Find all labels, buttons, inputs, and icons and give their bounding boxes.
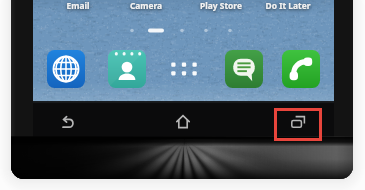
button[interactable]: Back [45, 105, 91, 137]
button[interactable]: Messaging [225, 50, 264, 89]
staticText: Play Store [188, 0, 254, 11]
button[interactable]: Home [160, 105, 206, 137]
button[interactable]: Browser [47, 50, 86, 89]
staticText: Camera [113, 0, 179, 11]
staticText: Email [45, 0, 111, 11]
button[interactable]: All apps [165, 50, 204, 89]
button[interactable]: Recent apps [275, 109, 321, 140]
staticText: Do It Later [255, 0, 321, 11]
button[interactable]: Contacts [108, 50, 147, 89]
button[interactable]: Phone [282, 50, 321, 89]
